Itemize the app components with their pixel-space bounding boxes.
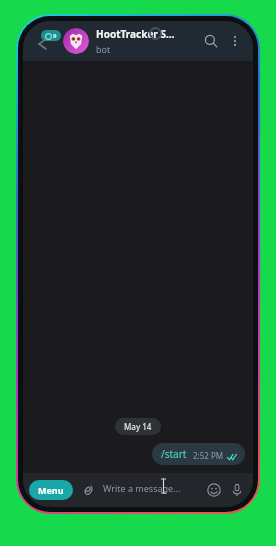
button[interactable]: /start <box>152 443 245 465</box>
staticText: /start <box>161 447 187 461</box>
staticText: Write a message… <box>103 482 181 494</box>
button[interactable]: Search <box>199 29 223 53</box>
button[interactable]: Emoji <box>204 480 224 500</box>
staticText: May 14 <box>124 421 152 432</box>
staticText: 2:52 PM <box>193 450 224 461</box>
button[interactable] <box>63 28 89 54</box>
staticText: HootTracker S… <box>96 27 175 41</box>
button[interactable]: More options <box>225 31 245 51</box>
staticText: 9 <box>53 32 57 40</box>
staticText: bot <box>96 43 111 55</box>
button[interactable]: Write a message… <box>103 482 204 498</box>
button[interactable]: May 14 <box>115 418 161 435</box>
button[interactable]: Menu <box>29 480 73 500</box>
button[interactable]: HootTracker S… <box>96 27 175 55</box>
button[interactable]: Voice message <box>227 480 247 500</box>
button[interactable]: Back <box>29 26 63 56</box>
staticText: Menu <box>38 484 64 496</box>
button[interactable]: Attach <box>79 481 97 499</box>
